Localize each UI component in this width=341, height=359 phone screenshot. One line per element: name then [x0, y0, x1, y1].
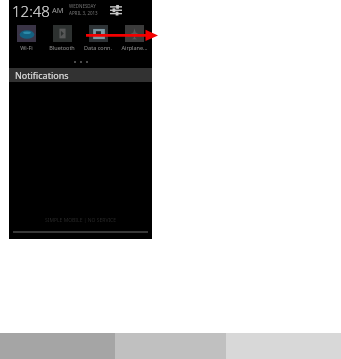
staticText: SIMPLE MOBILE | NO SERVICE [9, 217, 152, 224]
button[interactable]: Bluetooth [44, 25, 80, 51]
staticText: APRIL 3, 2013 [69, 10, 98, 16]
staticText: 12:48 [12, 1, 50, 18]
staticText: Airplane... [121, 44, 148, 51]
staticText: Bluetooth [49, 44, 75, 51]
staticText: WEDNESDAY [69, 3, 96, 9]
button[interactable]: Quick settings [109, 3, 122, 16]
staticText: Data conn. [84, 44, 112, 51]
staticText: Notifications [15, 69, 69, 81]
staticText: Wi-Fi [20, 44, 33, 51]
button[interactable]: Data conn. [80, 25, 116, 51]
button[interactable]: Notifications [9, 68, 152, 82]
button[interactable]: Wi-Fi [9, 25, 44, 51]
button[interactable]: Airplane... [116, 25, 152, 51]
staticText: AM [52, 5, 64, 15]
